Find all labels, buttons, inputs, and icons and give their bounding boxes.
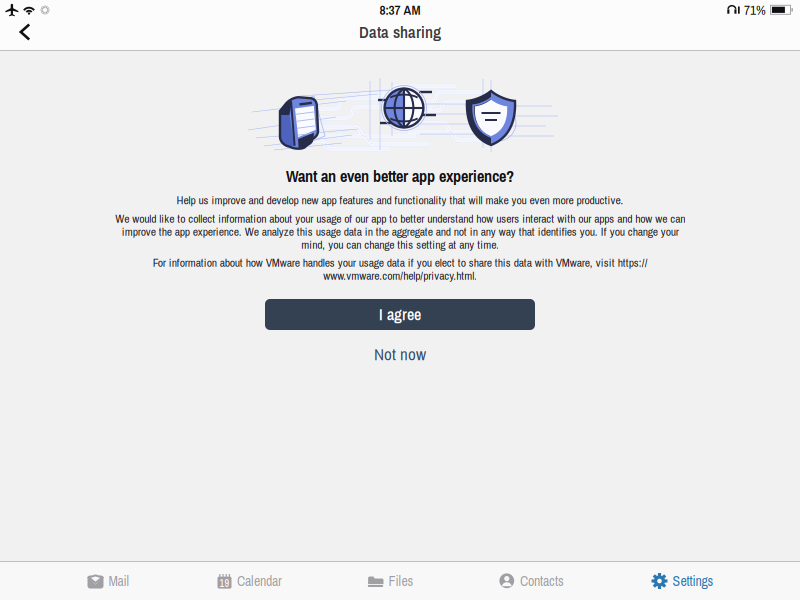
- staticText: Want an even better app experience?: [286, 165, 514, 187]
- button[interactable]: I agree: [265, 299, 535, 330]
- staticText: 8:37 AM: [379, 1, 420, 19]
- staticText: Data sharing: [359, 21, 441, 43]
- staticText: I agree: [379, 304, 421, 325]
- button[interactable]: Files: [320, 562, 461, 600]
- staticText: For information about how VMware handles…: [152, 256, 647, 282]
- staticText: 71%: [744, 1, 766, 19]
- button[interactable]: Settings: [612, 562, 753, 600]
- staticText: Help us improve and develop new app feat…: [176, 192, 623, 208]
- staticText: Not now: [374, 342, 426, 365]
- button[interactable]: Back: [5, 20, 43, 50]
- staticText: Contacts: [520, 572, 564, 590]
- staticText: We would like to collect information abo…: [115, 212, 685, 251]
- staticText: Files: [388, 572, 413, 590]
- button[interactable]: 19: [179, 562, 320, 600]
- staticText: Settings: [672, 572, 713, 590]
- staticText: Mail: [108, 572, 129, 590]
- button[interactable]: Mail: [38, 562, 179, 600]
- button[interactable]: Not now: [350, 342, 450, 366]
- button[interactable]: Contacts: [461, 562, 602, 600]
- staticText: 19: [219, 577, 229, 590]
- staticText: Calendar: [237, 572, 282, 590]
